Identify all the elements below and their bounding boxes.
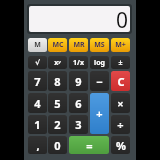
staticText: 7 [34,74,41,89]
button[interactable]: 6 [69,93,88,113]
staticText: 8 [54,74,61,89]
button[interactable]: MR [69,38,88,52]
button[interactable]: 7 [28,71,47,91]
staticText: 1/x [73,58,84,68]
button[interactable]: 2 [48,115,67,134]
staticText: ÷ [117,117,124,132]
staticText: 4 [34,96,41,111]
button[interactable]: 4 [28,93,47,113]
staticText: = [86,138,93,153]
button[interactable]: 3 [69,115,88,134]
staticText: MC [52,40,64,50]
button[interactable]: × [111,93,130,113]
button[interactable]: 1/x [69,56,88,69]
staticText: √ [35,59,40,67]
staticText: xʸ [54,58,61,68]
staticText: × [117,96,124,111]
button[interactable]: 9 [69,71,88,91]
button[interactable]: 1 [28,115,47,134]
staticText: MR [73,40,85,50]
button[interactable]: M+ [111,38,130,52]
button[interactable]: % [111,136,130,154]
button[interactable]: 8 [48,71,67,91]
staticText: ± [118,58,123,68]
button[interactable]: log [90,56,109,69]
button[interactable]: MC [48,38,67,52]
button[interactable]: C [111,71,130,91]
button[interactable]: ÷ [111,115,130,134]
staticText: 2 [54,117,61,132]
staticText: C [117,74,125,89]
staticText: , [36,138,40,153]
button[interactable]: + [90,93,109,134]
button[interactable]: M [28,38,47,52]
staticText: M+ [115,40,126,50]
button[interactable]: , [28,136,47,154]
button[interactable]: 5 [48,93,67,113]
staticText: 0 [54,138,61,153]
staticText: 5 [54,96,61,111]
button[interactable]: = [69,136,109,154]
staticText: 0 [116,6,129,32]
staticText: % [116,138,126,153]
button[interactable]: MS [90,38,109,52]
staticText: − [96,74,103,89]
staticText: MS [94,40,105,50]
button[interactable]: xʸ [48,56,67,69]
staticText: 1 [34,117,41,132]
staticText: + [96,106,103,121]
staticText: 9 [75,74,82,89]
staticText: 3 [75,117,82,132]
staticText: log [94,58,105,68]
button[interactable]: 0 [48,136,67,154]
button[interactable]: ± [111,56,130,69]
button[interactable]: − [90,71,109,91]
staticText: 6 [75,96,82,111]
staticText: M [34,40,41,50]
button[interactable]: √ [28,56,47,69]
